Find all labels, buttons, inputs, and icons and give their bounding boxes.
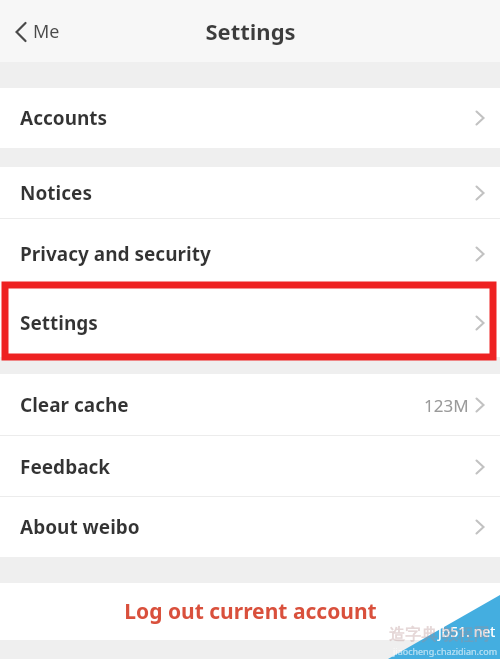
staticText: Settings: [20, 310, 98, 336]
button[interactable]: Me: [10, 15, 64, 48]
staticText: jb51. net: [438, 622, 496, 641]
button[interactable]: Log out current account: [0, 583, 500, 640]
button[interactable]: About weibo: [0, 497, 500, 557]
staticText: Feedback: [20, 454, 111, 480]
button[interactable]: Privacy and security: [0, 219, 500, 289]
button[interactable]: Clear cache: [0, 374, 500, 436]
staticText: Log out current account: [124, 597, 377, 626]
staticText: 造字典 教程网: [389, 623, 490, 645]
staticText: Accounts: [20, 105, 108, 131]
staticText: Settings: [205, 16, 296, 46]
button[interactable]: Settings: [0, 289, 500, 357]
staticText: 123M: [424, 394, 469, 417]
button[interactable]: Notices: [0, 167, 500, 219]
staticText: Notices: [20, 180, 92, 206]
staticText: jiaocheng.chazidian.com: [393, 645, 498, 657]
button[interactable]: Accounts: [0, 88, 500, 148]
staticText: Clear cache: [20, 392, 129, 418]
staticText: Privacy and security: [20, 241, 211, 267]
button[interactable]: Feedback: [0, 436, 500, 497]
staticText: About weibo: [20, 514, 140, 540]
staticText: Me: [33, 19, 60, 44]
